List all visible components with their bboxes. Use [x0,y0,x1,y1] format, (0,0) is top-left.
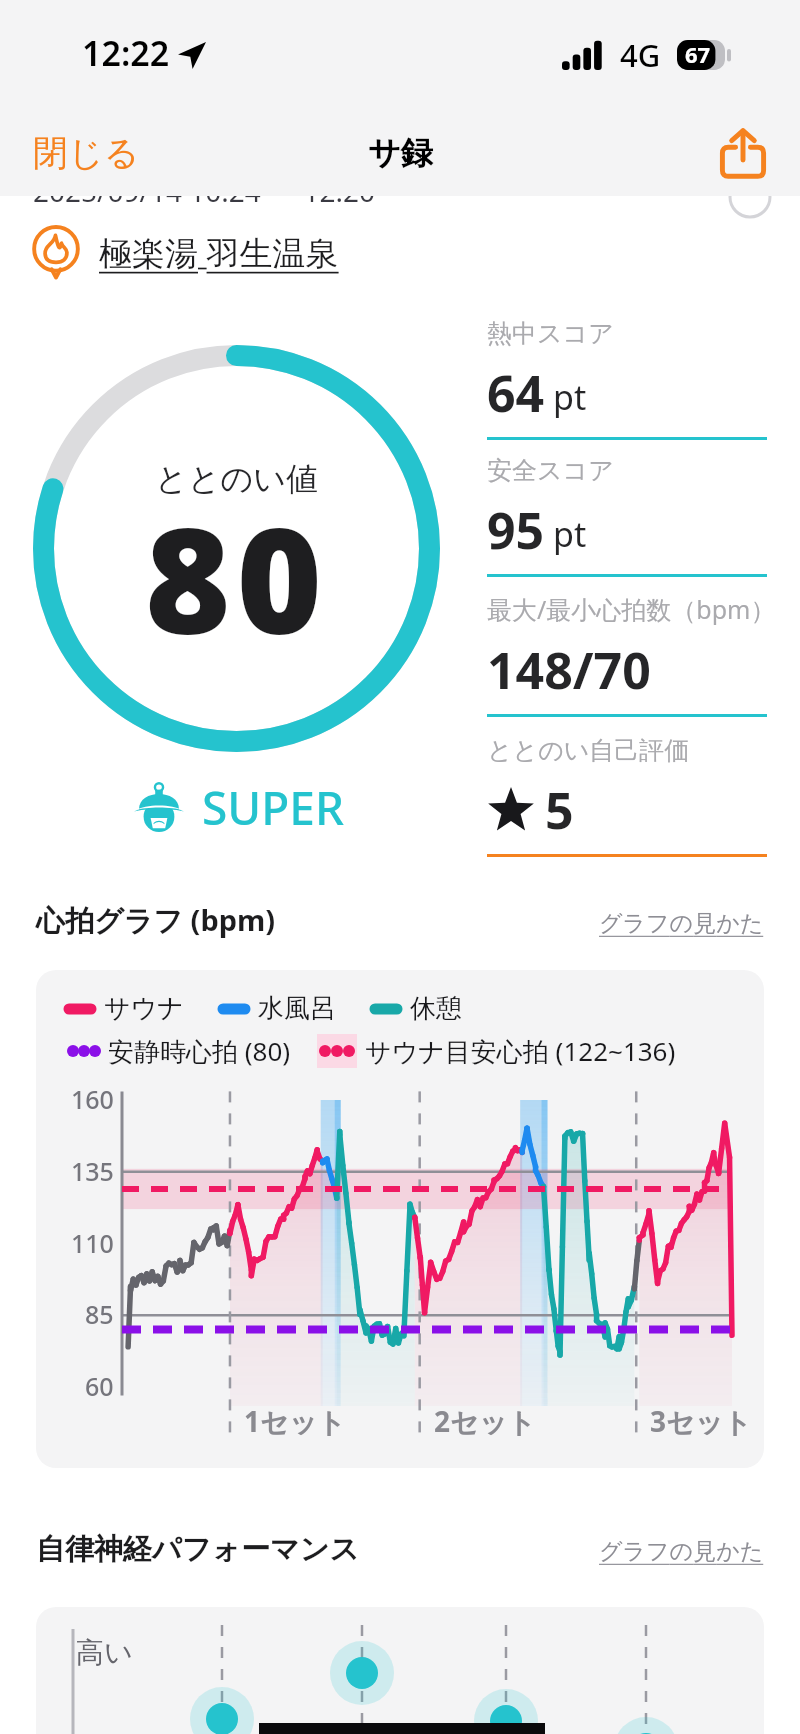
staticText: 心拍グラフ (bpm) [36,900,276,940]
staticText: 95 [487,496,545,564]
staticText: 110 [71,1226,114,1260]
staticText: 2025/09/14 10:24 〜 12:20 [33,172,375,210]
staticText: 2セット [434,1402,536,1440]
staticText: 60 [85,1369,114,1403]
staticText: ととのい自己評価 [487,735,690,766]
staticText: pt [553,374,587,420]
staticText: 閉じる [33,131,140,175]
staticText: 高い [76,1635,133,1670]
staticText: 休憩 [410,992,462,1025]
staticText: サウナ [104,992,184,1025]
button[interactable]: 極楽湯 羽生温泉 [30,226,339,278]
staticText: 148/70 [487,636,651,704]
staticText: サ録 [368,133,433,173]
staticText: 85 [85,1297,114,1331]
staticText: 極楽湯 羽生温泉 [99,230,339,275]
staticText: 3セット [650,1402,752,1440]
staticText: SUPER [202,776,345,839]
staticText: グラフの見かた [599,1537,764,1566]
staticText: 熱中スコア [487,318,614,349]
staticText: 4G [620,34,661,76]
staticText: 12:22 [82,30,170,76]
staticText: 安全スコア [487,455,614,486]
button[interactable]: Share [714,124,772,182]
staticText: ととのい値 [155,459,318,499]
staticText: 自律神経パフォーマンス [36,1531,360,1568]
staticText: 安静時心拍 (80) [108,1033,291,1069]
staticText: グラフの見かた [599,909,764,938]
staticText: 5 [545,776,574,844]
staticText: pt [553,511,587,557]
staticText: サウナ目安心拍 (122~136) [365,1033,676,1069]
staticText: 135 [71,1154,114,1188]
staticText: 80 [145,478,329,677]
staticText: 1セット [244,1402,346,1440]
staticText: 160 [71,1082,114,1116]
staticText: 64 [487,359,545,427]
staticText: 水風呂 [258,992,336,1025]
staticText: 最大/最小心拍数（bpm） [487,592,767,626]
staticText: 67 [685,39,711,69]
button[interactable]: グラフの見かた [599,911,764,940]
button[interactable]: グラフの見かた [599,1539,764,1568]
button[interactable]: 閉じる [0,119,173,187]
